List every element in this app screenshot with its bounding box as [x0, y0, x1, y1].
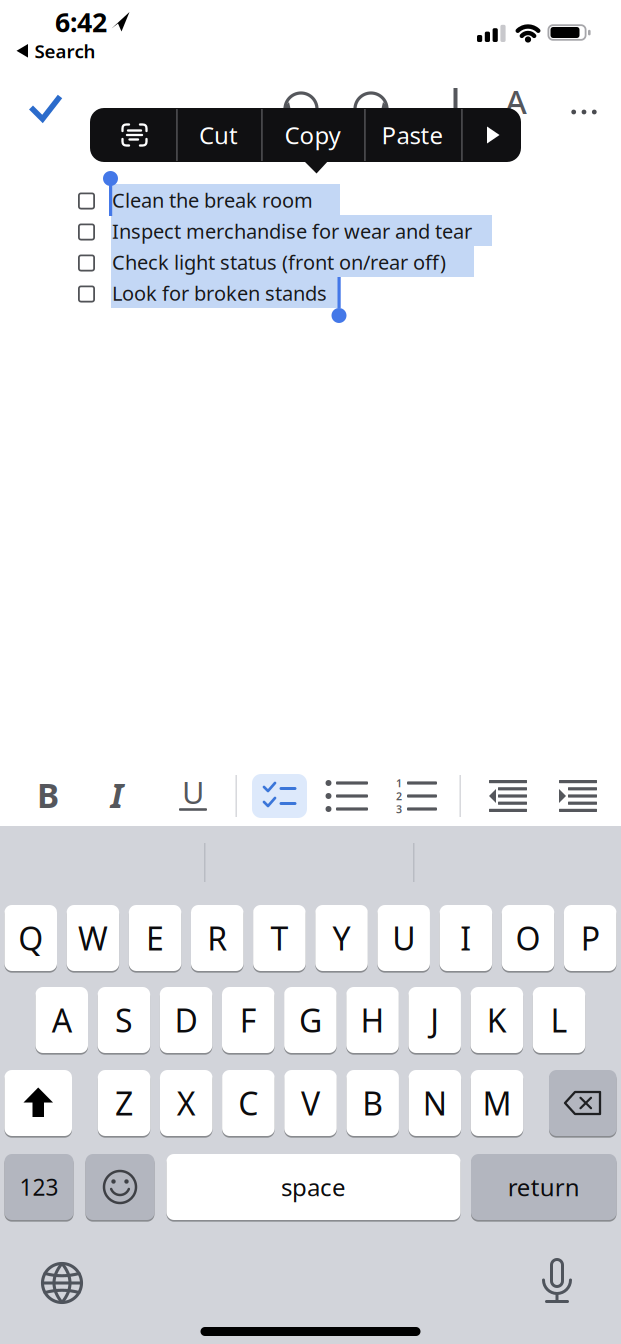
- button[interactable]: More menu items: [462, 108, 520, 162]
- staticText: Q: [18, 917, 43, 959]
- button[interactable]: Emoji: [85, 1154, 154, 1220]
- button[interactable]: L: [533, 987, 585, 1053]
- button[interactable]: Shift: [4, 1070, 72, 1136]
- staticText: K: [487, 999, 507, 1041]
- button[interactable]: B: [346, 1070, 399, 1136]
- staticText: space: [281, 1171, 346, 1203]
- button[interactable]: Undo: [279, 91, 323, 135]
- staticText: 123: [19, 1172, 58, 1202]
- button[interactable]: U: [377, 905, 430, 971]
- button[interactable]: Insert: [433, 88, 477, 132]
- button[interactable]: return: [471, 1154, 616, 1220]
- staticText: W: [78, 917, 108, 959]
- button[interactable]: Underline: [165, 768, 221, 824]
- staticText: Paste: [381, 119, 443, 151]
- staticText: R: [207, 917, 227, 959]
- button[interactable]: Numbered list: [389, 768, 445, 824]
- staticText: 2: [396, 789, 402, 803]
- button[interactable]: 123: [4, 1154, 73, 1220]
- staticText: U: [182, 772, 204, 812]
- staticText: V: [301, 1082, 320, 1124]
- button[interactable]: K: [471, 987, 523, 1053]
- button[interactable]: space: [166, 1154, 460, 1220]
- staticText: N: [423, 1082, 447, 1124]
- button[interactable]: X: [160, 1070, 212, 1136]
- staticText: B: [37, 773, 59, 817]
- staticText: M: [482, 1082, 511, 1124]
- button[interactable]: Z: [98, 1070, 150, 1136]
- staticText: D: [175, 999, 198, 1041]
- staticText: X: [177, 1082, 196, 1124]
- button[interactable]: More: [562, 95, 606, 129]
- staticText: A: [52, 999, 72, 1041]
- staticText: Look for broken stands: [112, 280, 327, 306]
- button[interactable]: Y: [315, 905, 368, 971]
- button[interactable]: Dictate: [527, 1251, 587, 1311]
- button[interactable]: R: [191, 905, 243, 971]
- button[interactable]: E: [129, 905, 181, 971]
- button[interactable]: Bold: [20, 767, 76, 823]
- staticText: B: [362, 1082, 383, 1124]
- button[interactable]: D: [160, 987, 212, 1053]
- staticText: Z: [115, 1082, 133, 1124]
- staticText: G: [299, 999, 322, 1041]
- button[interactable]: T: [253, 905, 306, 971]
- button[interactable]: I: [440, 905, 492, 971]
- staticText: C: [238, 1082, 258, 1124]
- button[interactable]: H: [346, 987, 399, 1053]
- button[interactable]: A: [35, 987, 88, 1053]
- button[interactable]: N: [409, 1070, 461, 1136]
- button[interactable]: Next keyboard: [32, 1253, 92, 1313]
- staticText: F: [240, 999, 257, 1041]
- button[interactable]: Decrease indent: [480, 768, 536, 824]
- button[interactable]: Paste: [365, 108, 460, 162]
- staticText: T: [270, 917, 288, 959]
- button[interactable]: Search: [15, 36, 97, 66]
- button[interactable]: C: [222, 1070, 275, 1136]
- staticText: P: [581, 917, 600, 959]
- button[interactable]: Bulleted list: [319, 768, 375, 824]
- button[interactable]: Q: [4, 905, 57, 971]
- staticText: Check light status (front on/rear off): [112, 249, 446, 275]
- staticText: S: [115, 999, 133, 1041]
- staticText: 3: [396, 802, 402, 816]
- staticText: Clean the break room: [112, 187, 313, 213]
- staticText: Cut: [199, 119, 238, 151]
- button[interactable]: V: [284, 1070, 337, 1136]
- button[interactable]: Checklist: [251, 768, 307, 824]
- button[interactable]: Select: [91, 108, 175, 162]
- staticText: U: [392, 917, 415, 959]
- staticText: Y: [332, 917, 350, 959]
- button[interactable]: O: [502, 905, 554, 971]
- button[interactable]: M: [471, 1070, 523, 1136]
- staticText: E: [146, 917, 164, 959]
- staticText: I: [110, 773, 123, 817]
- staticText: A: [505, 79, 527, 123]
- button[interactable]: F: [222, 987, 274, 1053]
- staticText: Inspect merchandise for wear and tear: [112, 218, 472, 244]
- staticText: J: [430, 999, 439, 1041]
- staticText: I: [460, 917, 471, 959]
- button[interactable]: G: [284, 987, 337, 1053]
- button[interactable]: Done: [23, 88, 67, 128]
- button[interactable]: Redo: [349, 91, 393, 135]
- staticText: L: [550, 999, 567, 1041]
- button[interactable]: S: [98, 987, 150, 1053]
- staticText: Copy: [284, 119, 340, 151]
- button[interactable]: W: [67, 905, 119, 971]
- button[interactable]: J: [408, 987, 461, 1053]
- button[interactable]: Increase indent: [550, 768, 606, 824]
- staticText: O: [515, 917, 540, 959]
- button[interactable]: Cut: [177, 108, 260, 162]
- button[interactable]: Delete: [549, 1070, 616, 1136]
- staticText: 1: [396, 776, 402, 790]
- button[interactable]: Copy: [262, 108, 363, 162]
- staticText: H: [360, 999, 384, 1041]
- button[interactable]: Format: [494, 79, 538, 123]
- staticText: Search: [34, 39, 95, 63]
- staticText: return: [508, 1171, 580, 1203]
- button[interactable]: P: [564, 905, 616, 971]
- staticText: 6:42: [55, 4, 107, 40]
- button[interactable]: Italic: [89, 767, 145, 823]
